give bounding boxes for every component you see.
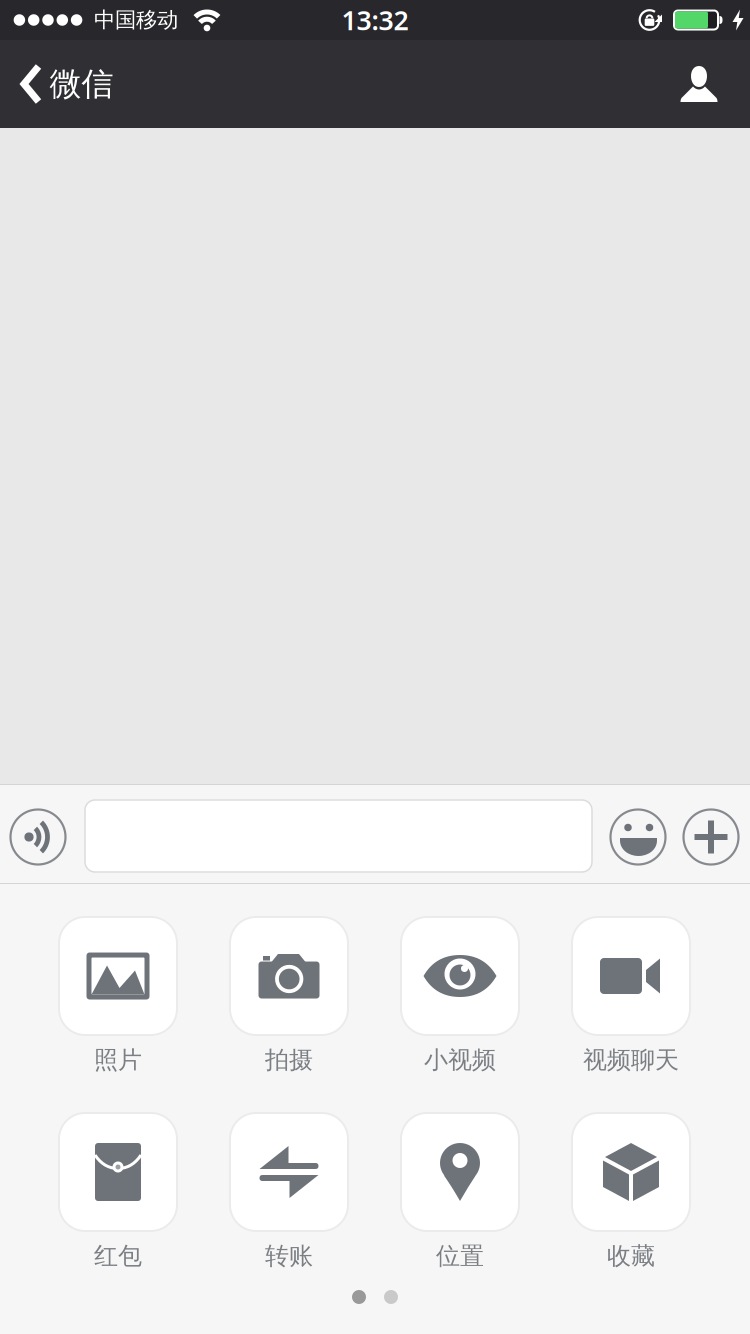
staticText: 视频聊天 xyxy=(583,1045,679,1075)
button[interactable]: 拍摄 xyxy=(203,917,374,1113)
button[interactable]: 收藏 xyxy=(545,1113,716,1309)
button[interactable]: More functions xyxy=(683,809,738,864)
button[interactable]: 小视频 xyxy=(374,917,545,1113)
button[interactable]: Contact info xyxy=(664,40,733,128)
button[interactable]: 微信 xyxy=(6,40,127,128)
button[interactable]: 红包 xyxy=(32,1113,203,1309)
staticText: 13:32 xyxy=(341,2,408,38)
button[interactable]: Emoji xyxy=(610,809,665,864)
button[interactable]: Message input xyxy=(85,800,592,872)
staticText: 中国移动 xyxy=(94,7,178,33)
button[interactable]: 转账 xyxy=(203,1113,374,1309)
staticText: 拍摄 xyxy=(265,1045,313,1075)
staticText: 微信 xyxy=(49,64,113,104)
staticText: 转账 xyxy=(265,1241,313,1271)
staticText: 小视频 xyxy=(424,1045,496,1075)
staticText: 收藏 xyxy=(607,1241,655,1271)
staticText: 照片 xyxy=(94,1045,142,1075)
button[interactable]: 视频聊天 xyxy=(545,917,716,1113)
button[interactable]: 照片 xyxy=(32,917,203,1113)
staticText: 位置 xyxy=(436,1241,484,1271)
staticText: 红包 xyxy=(94,1241,142,1271)
button[interactable]: Hold to talk xyxy=(10,809,65,864)
button[interactable]: 位置 xyxy=(374,1113,545,1309)
